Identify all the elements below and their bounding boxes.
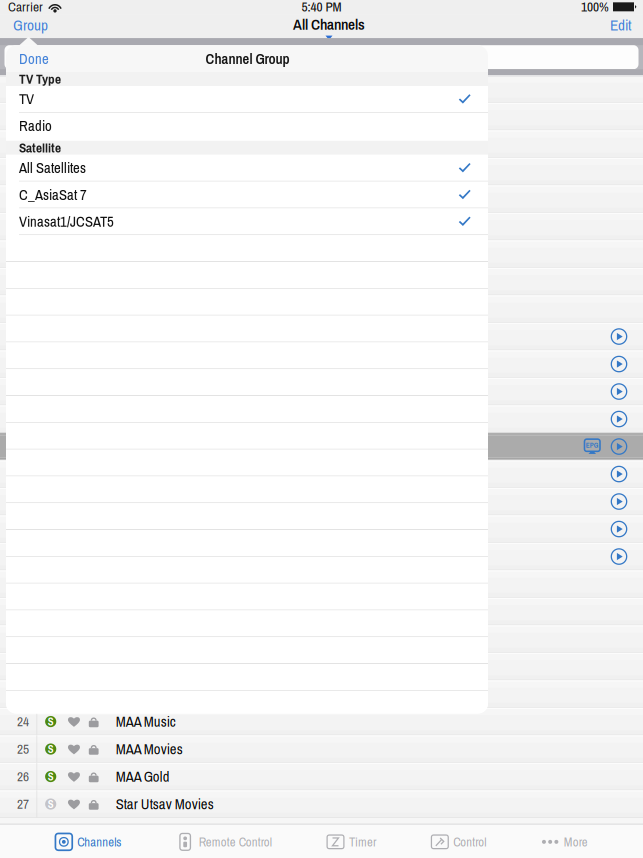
staticText: MAA Gold: [116, 767, 170, 786]
staticText: Channel Group: [205, 49, 289, 69]
staticText: MAA Movies: [116, 739, 183, 759]
button[interactable]: Radio: [6, 113, 488, 139]
staticText: 100%: [581, 0, 609, 16]
staticText: S: [48, 742, 54, 756]
staticText: Done: [19, 49, 49, 69]
staticText: Radio: [19, 116, 52, 136]
button[interactable]: 27: [0, 790, 643, 818]
staticText: S: [48, 769, 54, 784]
staticText: TV: [19, 89, 34, 109]
button[interactable]: Timer: [327, 824, 376, 858]
staticText: Satellite: [19, 139, 61, 157]
button[interactable]: Group: [0, 15, 56, 38]
button[interactable]: More: [542, 824, 588, 858]
button[interactable]: Channels: [55, 824, 121, 858]
staticText: 25: [17, 740, 29, 758]
button[interactable]: 26: [0, 763, 643, 790]
staticText: C_AsiaSat 7: [19, 185, 87, 204]
button[interactable]: Vinasat1/JCSAT5: [6, 208, 488, 234]
staticText: Star Utsav Movies: [116, 794, 214, 814]
staticText: All Satellites: [19, 158, 86, 178]
staticText: Remote Control: [199, 833, 272, 850]
staticText: Edit: [610, 15, 631, 35]
staticText: More: [564, 833, 588, 850]
button[interactable]: 25: [0, 735, 643, 763]
staticText: EPG: [586, 440, 599, 450]
button[interactable]: C_AsiaSat 7: [6, 182, 488, 208]
button[interactable]: Done: [6, 45, 59, 72]
staticText: 24: [17, 713, 29, 731]
staticText: Timer: [349, 833, 376, 850]
staticText: 27: [17, 795, 29, 813]
button[interactable]: Control: [431, 824, 486, 858]
staticText: All Channels: [293, 14, 365, 35]
button[interactable]: Search: [0, 45, 643, 69]
staticText: Control: [453, 833, 486, 850]
staticText: S: [48, 714, 54, 729]
staticText: Vinasat1/JCSAT5: [19, 211, 114, 231]
button[interactable]: All Satellites: [6, 155, 488, 181]
staticText: Carrier: [8, 0, 43, 16]
staticText: S: [48, 797, 54, 811]
staticText: MAA Music: [116, 712, 176, 731]
staticText: Channels: [77, 833, 121, 850]
staticText: 5:40 PM: [301, 0, 341, 16]
button[interactable]: TV: [6, 86, 488, 112]
staticText: Group: [13, 15, 48, 35]
button[interactable]: 24: [0, 708, 643, 735]
staticText: TV Type: [19, 70, 61, 88]
button[interactable]: Remote Control: [177, 824, 272, 858]
staticText: 26: [17, 768, 29, 786]
button[interactable]: Edit: [602, 15, 643, 38]
